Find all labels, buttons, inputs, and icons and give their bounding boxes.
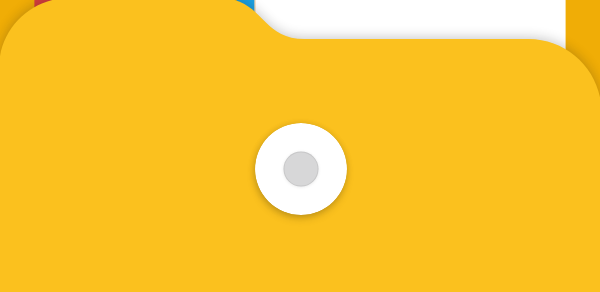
button[interactable]: Folder [0,0,600,292]
button[interactable]: Open folder [255,123,347,215]
